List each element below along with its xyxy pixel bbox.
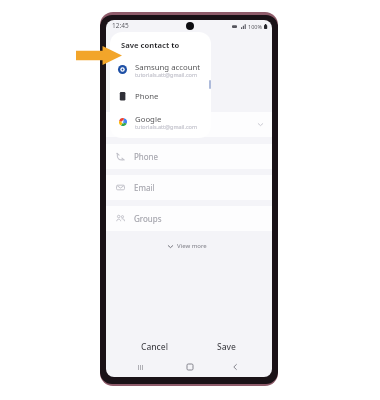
button[interactable]: Home (179, 357, 201, 377)
button[interactable]: Phone (106, 144, 272, 169)
staticText: tutorials.att@gmail.com (135, 123, 198, 130)
staticText: Phone (135, 91, 159, 102)
staticText: Email (134, 182, 155, 193)
staticText: Samsung account (135, 62, 201, 73)
button[interactable]: Cancel (134, 339, 174, 355)
button[interactable]: Phone (110, 87, 211, 107)
staticText: View more (177, 242, 207, 250)
staticText: Save (217, 341, 236, 353)
button[interactable]: Save (206, 339, 246, 355)
staticText: 12:45 (112, 21, 129, 30)
staticText: Groups (134, 213, 162, 224)
button[interactable]: Groups (106, 206, 272, 231)
button[interactable]: Samsung account (110, 58, 211, 78)
staticText: Google (135, 114, 162, 125)
button[interactable]: Google (110, 110, 211, 130)
staticText: Phone (134, 151, 159, 162)
button[interactable]: Email (106, 175, 272, 200)
staticText: tutorials.att@gmail.com (135, 71, 198, 78)
button[interactable]: Account selector (106, 112, 272, 137)
staticText: 100% (248, 23, 263, 30)
button[interactable]: Back (224, 357, 246, 377)
button[interactable]: Recent apps (129, 357, 151, 377)
button[interactable]: View more (167, 239, 213, 253)
staticText: Cancel (141, 341, 168, 353)
staticText: Save contact to (121, 40, 180, 50)
